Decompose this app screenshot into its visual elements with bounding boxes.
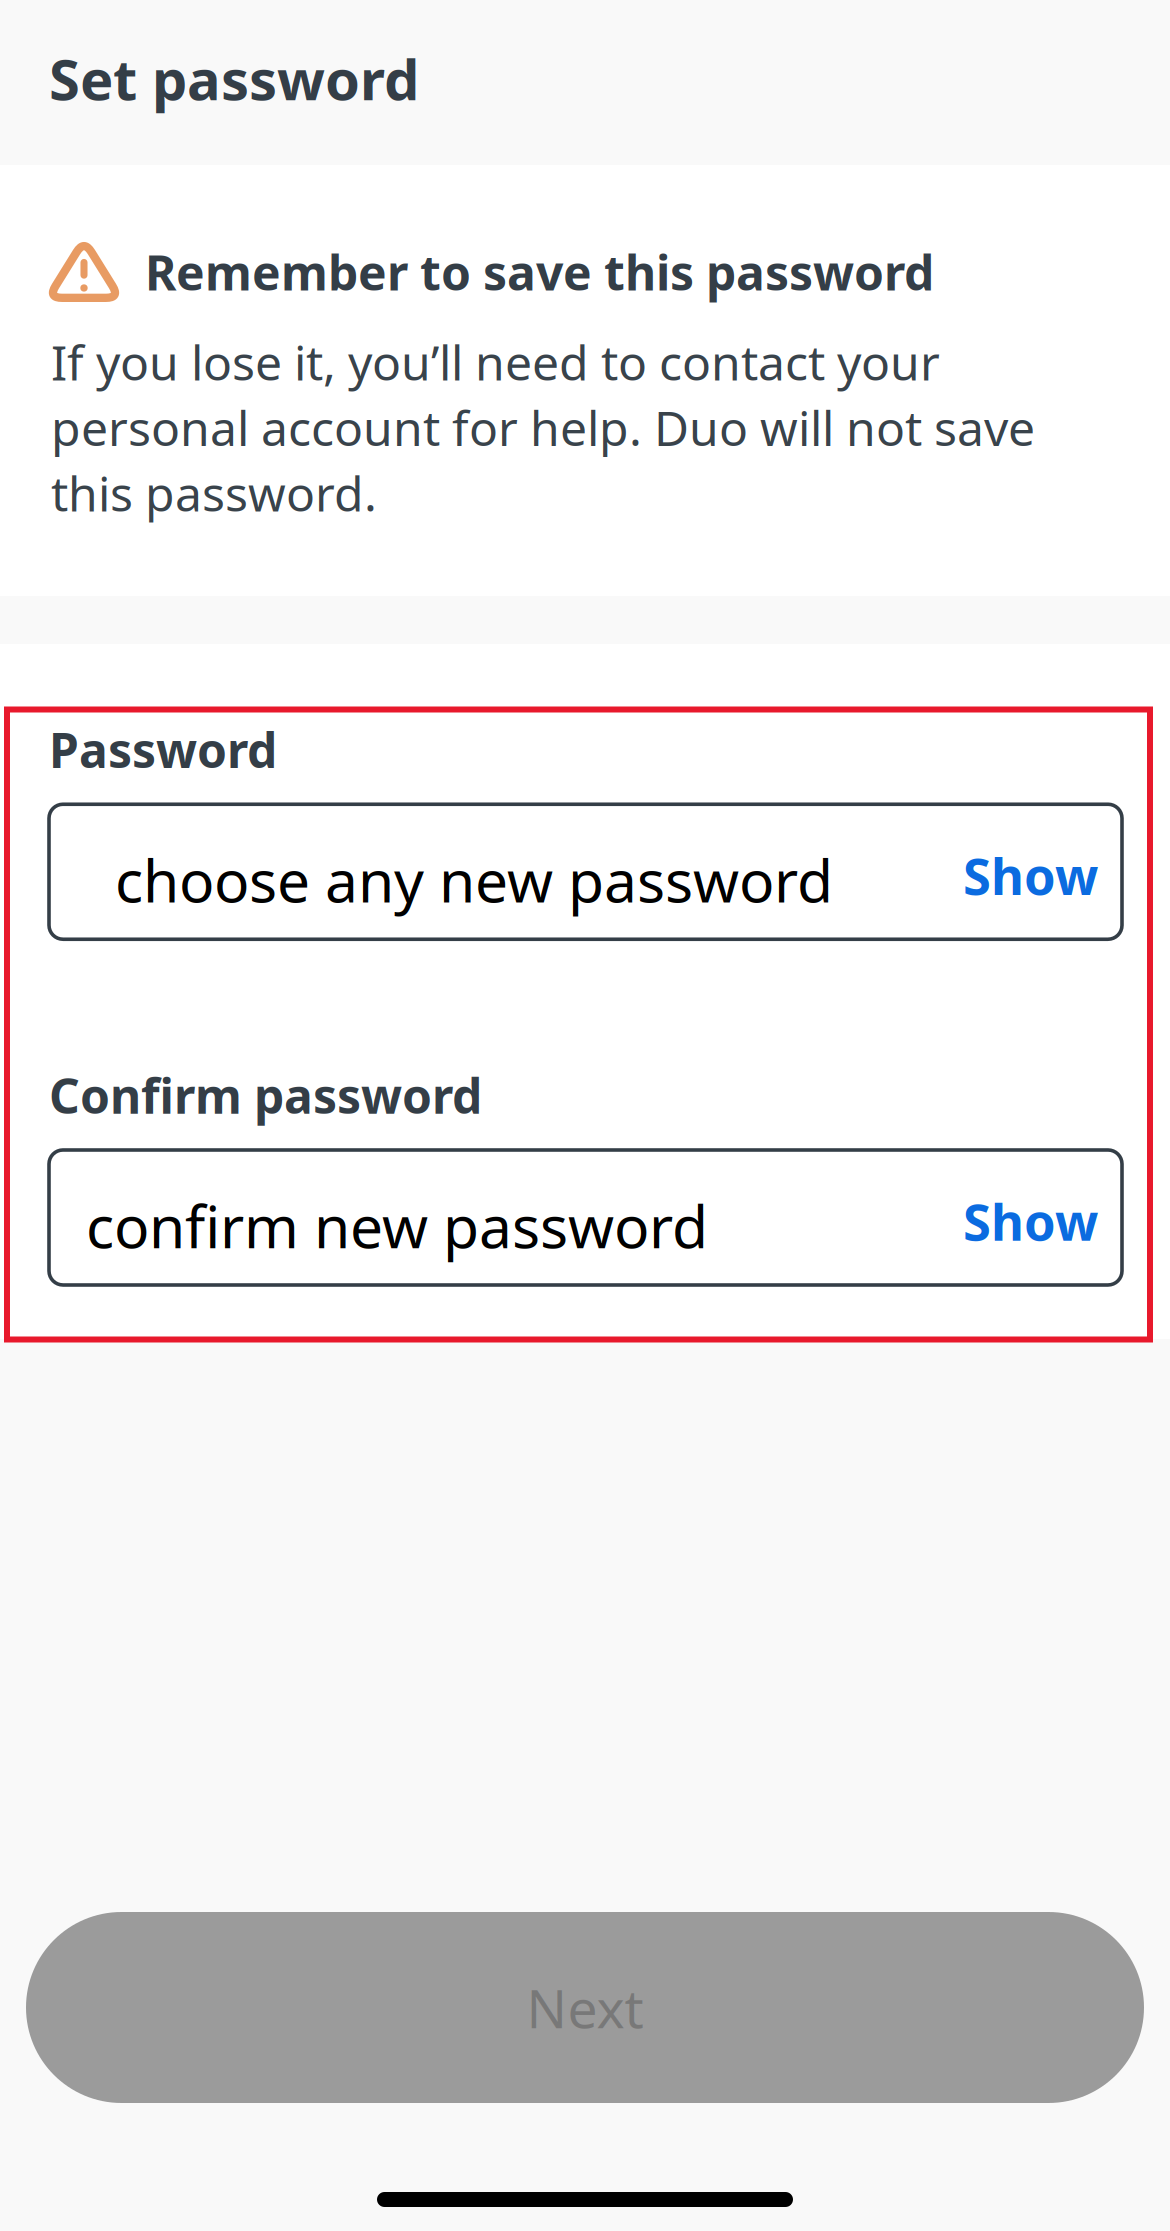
button[interactable]: Show bbox=[963, 1180, 1122, 1255]
staticText: If you lose it, you’ll need to contact y… bbox=[51, 330, 1035, 525]
staticText: Show bbox=[963, 842, 1098, 909]
staticText: confirm new password bbox=[86, 1186, 708, 1264]
button[interactable]: choose any new password bbox=[49, 804, 1122, 939]
button[interactable]: confirm new password bbox=[49, 1150, 1122, 1285]
button[interactable]: Show bbox=[963, 835, 1122, 909]
staticText: Remember to save this password bbox=[145, 240, 934, 304]
staticText: Set password bbox=[49, 41, 419, 116]
staticText: choose any new password bbox=[115, 841, 833, 919]
staticText: Show bbox=[963, 1187, 1098, 1255]
staticText: Password bbox=[49, 717, 277, 781]
staticText: Confirm password bbox=[49, 1063, 482, 1127]
staticText: Next bbox=[526, 1972, 643, 2043]
button[interactable]: Next bbox=[26, 1912, 1144, 2103]
